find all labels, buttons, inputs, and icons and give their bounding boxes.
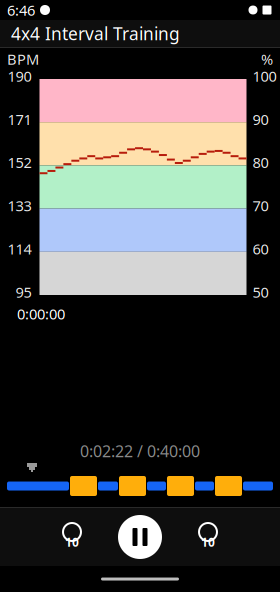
staticText: 133	[7, 196, 31, 215]
staticText: 0:02:22 / 0:40:00	[80, 440, 200, 462]
staticText: 60	[252, 239, 268, 259]
staticText: 190	[7, 66, 31, 86]
staticText: 10	[65, 534, 79, 550]
staticText: BPM	[7, 49, 39, 69]
staticText: 100	[252, 66, 276, 86]
staticText: 70	[252, 196, 268, 215]
button[interactable]: Skip forward 10 seconds	[191, 520, 225, 554]
staticText: 171	[7, 109, 31, 129]
staticText: 95	[15, 282, 31, 302]
staticText: 152	[7, 153, 31, 172]
button[interactable]: Pause	[115, 512, 165, 562]
staticText: 4x4 Interval Training	[11, 22, 180, 45]
staticText: 90	[252, 109, 268, 129]
staticText: 10	[201, 534, 215, 550]
staticText: 80	[252, 153, 268, 172]
button[interactable]: Skip back 10 seconds	[55, 520, 89, 554]
staticText: 0:00:00	[17, 304, 65, 323]
staticText: 50	[252, 282, 268, 302]
staticText: 114	[7, 239, 31, 259]
staticText: 6:46	[7, 0, 35, 20]
staticText: %	[261, 49, 273, 69]
